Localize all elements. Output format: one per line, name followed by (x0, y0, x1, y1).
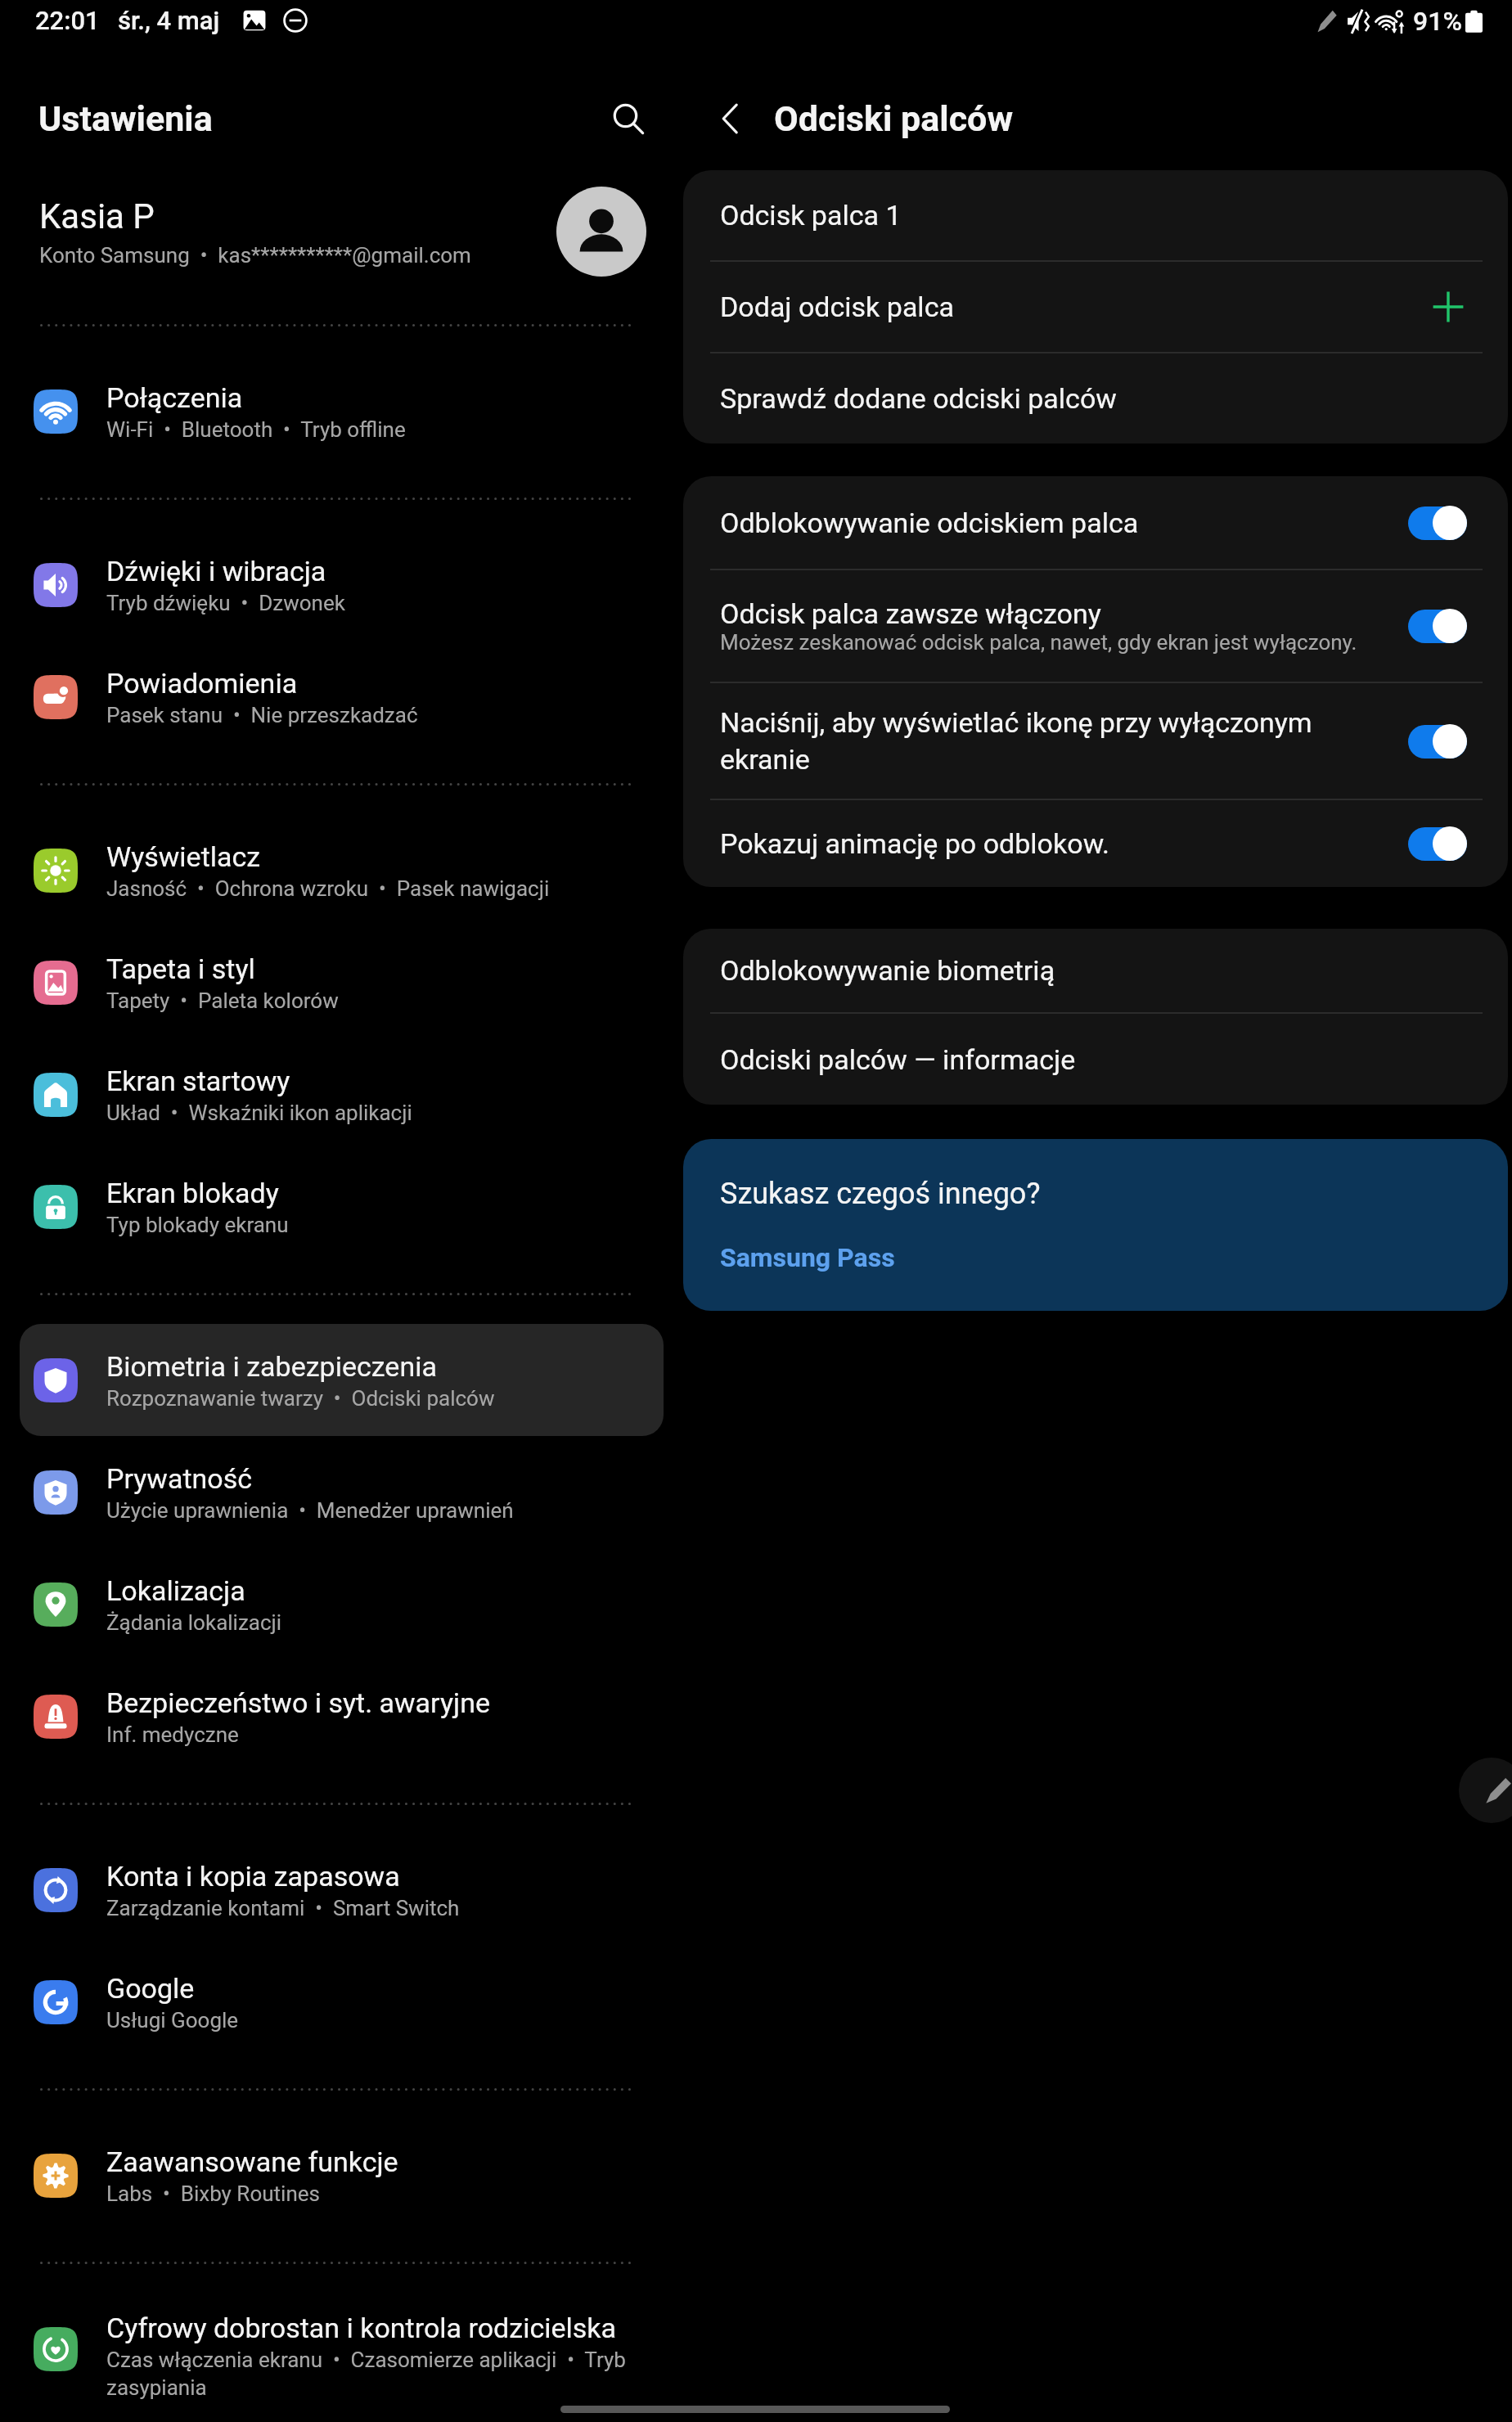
staticText: 22:01 (35, 6, 100, 35)
staticText: Użycie uprawnienia • Menedżer uprawnień (106, 1498, 514, 1523)
staticText: śr., 4 maj (118, 6, 220, 35)
staticText: Dźwięki i wibracja (106, 555, 326, 587)
button[interactable]: Ekran startowy (20, 1038, 664, 1150)
staticText: Cyfrowy dobrostan i kontrola rodzicielsk… (106, 2312, 617, 2344)
button[interactable]: Konta i kopia zapasowa (20, 1834, 664, 1946)
button[interactable]: Naciśnij, aby wyświetlać ikonę przy wyłą… (683, 683, 1508, 799)
button[interactable]: Sprawdź dodane odciski palców (683, 353, 1508, 443)
button[interactable]: Ekran blokady (20, 1150, 664, 1263)
button[interactable]: Tapeta i styl (20, 926, 664, 1038)
staticText: Naciśnij, aby wyświetlać ikonę przy wyłą… (720, 706, 1384, 777)
staticText: Zarządzanie kontami • Smart Switch (106, 1896, 460, 1920)
staticText: Odblokowywanie odciskiem palca (720, 506, 1139, 539)
staticText: Odblokowywanie biometrią (720, 954, 1467, 987)
staticText: Tapety • Paleta kolorów (106, 988, 339, 1013)
staticText: Konto Samsung • kas***********@gmail.com (39, 243, 471, 268)
button[interactable]: Cyfrowy dobrostan i kontrola rodzicielsk… (20, 2293, 664, 2405)
button[interactable]: Przełącznik (1408, 722, 1485, 761)
staticText: Pokazuj animację po odblokow. (720, 827, 1110, 860)
staticText: Samsung Pass (720, 1242, 895, 1273)
staticText: Ustawienia (38, 98, 598, 139)
staticText: Tryb dźwięku • Dzwonek (106, 591, 345, 615)
button[interactable]: Pokazuj animację po odblokow. (683, 800, 1508, 887)
staticText: Lokalizacja (106, 1574, 245, 1607)
staticText: Wyświetlacz (106, 840, 261, 873)
button[interactable]: Edytuj (1459, 1758, 1512, 1823)
button[interactable]: Dźwięki i wibracja (20, 529, 664, 641)
button[interactable]: Wyświetlacz (20, 814, 664, 926)
staticText: Rozpoznawanie twarzy • Odciski palców (106, 1386, 495, 1411)
button[interactable]: Przełącznik (1408, 824, 1485, 863)
staticText: Wi-Fi • Bluetooth • Tryb offline (106, 417, 406, 442)
staticText: Odciski palców — informacje (720, 1043, 1467, 1076)
staticText: Konta i kopia zapasowa (106, 1860, 400, 1893)
staticText: 91% (1413, 6, 1462, 37)
staticText: Połączenia (106, 381, 243, 414)
button[interactable]: Połączenia (20, 355, 664, 467)
button[interactable]: Odcisk palca zawsze włączony (683, 570, 1508, 682)
button[interactable]: Bezpieczeństwo i syt. awaryjne (20, 1660, 664, 1772)
staticText: Biometria i zabezpieczenia (106, 1350, 437, 1383)
staticText: Możesz zeskanować odcisk palca, nawet, g… (720, 630, 1357, 655)
button[interactable]: Dodaj odcisk palca (683, 262, 1508, 352)
button[interactable]: Przełącznik (1408, 503, 1485, 542)
staticText: Powiadomienia (106, 667, 298, 700)
button[interactable]: Wstecz (702, 90, 759, 147)
staticText: Odcisk palca 1 (720, 199, 1467, 232)
staticText: Kasia P (39, 196, 155, 236)
button[interactable]: Odblokowywanie odciskiem palca (683, 476, 1508, 569)
staticText: Szukasz czegoś innego? (720, 1177, 1041, 1211)
staticText: Pasek stanu • Nie przeszkadzać (106, 703, 418, 727)
staticText: Zaawansowane funkcje (106, 2145, 398, 2178)
button[interactable]: Lokalizacja (20, 1548, 664, 1660)
button[interactable]: Odblokowywanie biometrią (683, 929, 1508, 1012)
button[interactable]: Biometria i zabezpieczenia (20, 1324, 664, 1436)
staticText: Tapeta i styl (106, 952, 255, 985)
staticText: Żądania lokalizacji (106, 1610, 282, 1635)
staticText: Ekran startowy (106, 1065, 290, 1097)
button[interactable]: Przełącznik (1408, 606, 1485, 646)
staticText: Odcisk palca zawsze włączony (720, 597, 1101, 630)
button[interactable]: Kasia P (0, 165, 683, 298)
staticText: Jasność • Ochrona wzroku • Pasek nawigac… (106, 876, 550, 901)
staticText: Prywatność (106, 1462, 253, 1495)
button[interactable]: Odcisk palca 1 (683, 170, 1508, 260)
staticText: Usługi Google (106, 2008, 239, 2033)
staticText: Bezpieczeństwo i syt. awaryjne (106, 1686, 490, 1719)
staticText: Labs • Bixby Routines (106, 2181, 320, 2206)
button[interactable]: Zaawansowane funkcje (20, 2119, 664, 2231)
staticText: Odciski palców (774, 98, 1014, 139)
button[interactable]: Powiadomienia (20, 641, 664, 753)
button[interactable]: Szukaj (598, 88, 659, 149)
staticText: Dodaj odcisk palca (720, 290, 1429, 323)
button[interactable]: Odciski palców — informacje (683, 1014, 1508, 1105)
staticText: Ekran blokady (106, 1177, 279, 1209)
button[interactable]: Google (20, 1946, 664, 2058)
button[interactable]: Szukasz czegoś innego? (683, 1139, 1508, 1311)
staticText: Inf. medyczne (106, 1722, 239, 1747)
staticText: Układ • Wskaźniki ikon aplikacji (106, 1101, 412, 1125)
staticText: Czas włączenia ekranu • Czasomierze apli… (106, 2348, 647, 2400)
staticText: Sprawdź dodane odciski palców (720, 382, 1467, 415)
button[interactable]: Prywatność (20, 1436, 664, 1548)
staticText: Google (106, 1972, 195, 2005)
staticText: Typ blokady ekranu (106, 1213, 289, 1237)
